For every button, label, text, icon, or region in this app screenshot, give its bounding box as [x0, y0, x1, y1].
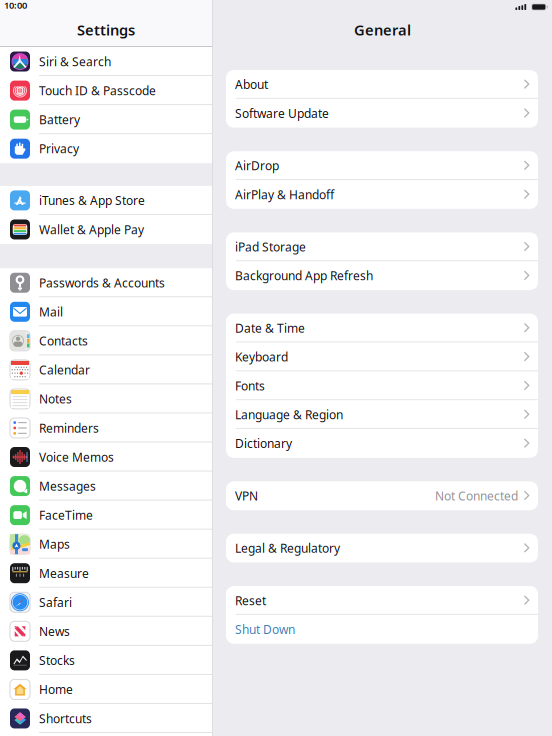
- button[interactable]: Maps: [0, 530, 212, 559]
- button[interactable]: AirDrop: [226, 151, 538, 180]
- button[interactable]: iPad Storage: [226, 232, 538, 261]
- staticText: About: [235, 76, 268, 92]
- staticText: AirPlay & Handoff: [235, 186, 334, 202]
- staticText: Maps: [39, 536, 70, 552]
- button[interactable]: Passwords & Accounts: [0, 268, 212, 297]
- button[interactable]: VPN: [226, 481, 538, 510]
- button[interactable]: Fonts: [226, 371, 538, 400]
- staticText: Reset: [235, 592, 266, 608]
- staticText: Background App Refresh: [235, 268, 373, 284]
- staticText: Privacy: [39, 141, 79, 157]
- staticText: Keyboard: [235, 349, 288, 365]
- staticText: Contacts: [39, 333, 88, 349]
- button[interactable]: Date & Time: [226, 314, 538, 342]
- staticText: Calendar: [39, 362, 90, 378]
- staticText: Passwords & Accounts: [39, 275, 165, 291]
- staticText: Mail: [39, 304, 63, 320]
- button[interactable]: Safari: [0, 588, 212, 617]
- staticText: Home: [39, 681, 73, 697]
- staticText: Stocks: [39, 652, 75, 668]
- button[interactable]: AirPlay & Handoff: [226, 180, 538, 209]
- staticText: Reminders: [39, 420, 99, 436]
- staticText: iPad Storage: [235, 239, 306, 255]
- staticText: General: [354, 20, 411, 39]
- button[interactable]: Messages: [0, 472, 212, 501]
- button[interactable]: Notes: [0, 384, 212, 413]
- staticText: Safari: [39, 594, 72, 610]
- staticText: FaceTime: [39, 507, 93, 523]
- staticText: Notes: [39, 391, 72, 407]
- button[interactable]: Mail: [0, 297, 212, 326]
- button[interactable]: Reminders: [0, 413, 212, 442]
- staticText: Messages: [39, 478, 96, 494]
- staticText: Shortcuts: [39, 710, 92, 726]
- button[interactable]: Measure: [0, 559, 212, 588]
- button[interactable]: Shortcuts: [0, 704, 212, 733]
- button[interactable]: Background App Refresh: [226, 261, 538, 290]
- staticText: Wallet & Apple Pay: [39, 221, 144, 237]
- staticText: 10:00: [4, 0, 27, 11]
- button[interactable]: Stocks: [0, 646, 212, 675]
- button[interactable]: Language & Region: [226, 400, 538, 429]
- button[interactable]: iTunes & App Store: [0, 186, 212, 215]
- staticText: Voice Memos: [39, 449, 114, 465]
- button[interactable]: Reset: [226, 586, 538, 615]
- staticText: Software Update: [235, 105, 329, 121]
- button[interactable]: News: [0, 617, 212, 646]
- button[interactable]: Touch ID & Passcode: [0, 76, 212, 105]
- button[interactable]: Dictionary: [226, 429, 538, 458]
- button[interactable]: Calendar: [0, 355, 212, 384]
- button[interactable]: About: [226, 70, 538, 99]
- staticText: AirDrop: [235, 158, 279, 174]
- button[interactable]: FaceTime: [0, 501, 212, 530]
- staticText: Settings: [77, 20, 135, 39]
- button[interactable]: Privacy: [0, 134, 212, 163]
- staticText: Not Connected: [435, 488, 518, 504]
- button[interactable]: Voice Memos: [0, 442, 212, 472]
- staticText: iTunes & App Store: [39, 192, 145, 208]
- staticText: Battery: [39, 112, 80, 128]
- button[interactable]: Software Update: [226, 99, 538, 128]
- button[interactable]: Home: [0, 675, 212, 704]
- button[interactable]: Keyboard: [226, 342, 538, 371]
- staticText: Dictionary: [235, 435, 292, 451]
- staticText: Fonts: [235, 378, 265, 394]
- staticText: Date & Time: [235, 320, 305, 336]
- staticText: Language & Region: [235, 407, 343, 422]
- staticText: VPN: [235, 488, 258, 504]
- staticText: Siri & Search: [39, 54, 111, 69]
- button[interactable]: Siri & Search: [0, 47, 212, 76]
- button[interactable]: Wallet & Apple Pay: [0, 215, 212, 244]
- staticText: News: [39, 623, 70, 639]
- staticText: Legal & Regulatory: [235, 540, 340, 556]
- staticText: Touch ID & Passcode: [39, 83, 156, 98]
- button[interactable]: Contacts: [0, 326, 212, 355]
- staticText: Measure: [39, 565, 89, 581]
- button[interactable]: Legal & Regulatory: [226, 534, 538, 563]
- staticText: Shut Down: [235, 621, 295, 637]
- button[interactable]: Battery: [0, 105, 212, 134]
- button[interactable]: Shut Down: [226, 615, 538, 644]
